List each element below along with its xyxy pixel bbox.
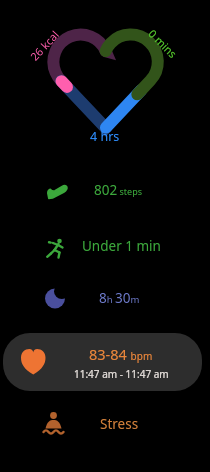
staticText: Under 1 min [82, 237, 161, 255]
staticText: 83-84 bpm [89, 344, 153, 364]
staticText: Stress [100, 415, 139, 433]
staticText: 802 steps [94, 181, 142, 199]
staticText: 8h 30m [99, 289, 140, 307]
button[interactable]: Stress [0, 404, 210, 444]
staticText: 26 kcal [27, 27, 62, 64]
staticText: 11:47 am - 11:47 am [74, 367, 169, 381]
staticText: 4 hrs [90, 128, 120, 145]
button[interactable]: 8h 30m [0, 278, 210, 318]
button[interactable]: 802 steps [0, 170, 210, 210]
button[interactable]: 83-84 bpm [3, 333, 202, 391]
staticText: 0 mins [145, 26, 181, 61]
button[interactable]: Under 1 min [0, 226, 210, 266]
